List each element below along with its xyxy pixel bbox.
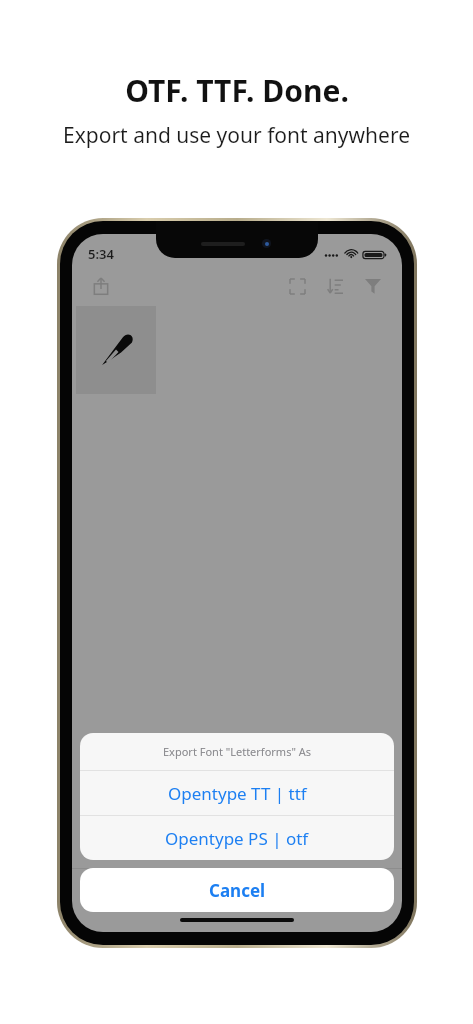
staticText: Export Font "Letterforms" As: [163, 744, 312, 759]
button[interactable]: Sort: [320, 271, 350, 301]
button[interactable]: Filter: [358, 271, 388, 301]
button[interactable]: Share: [86, 271, 116, 301]
button[interactable]: Cancel: [80, 868, 394, 912]
staticText: OTF. TTF. Done.: [125, 70, 349, 111]
staticText: 5:34: [88, 245, 114, 263]
staticText: Opentype PS | otf: [165, 827, 309, 850]
staticText: Cancel: [209, 879, 266, 902]
button[interactable]: Fit to screen: [282, 271, 312, 301]
staticText: Export and use your font anywhere: [63, 121, 410, 150]
button[interactable]: Opentype PS | otf: [80, 816, 394, 860]
button[interactable]: Opentype TT | ttf: [80, 771, 394, 815]
staticText: Opentype TT | ttf: [168, 782, 307, 805]
button[interactable]: [76, 306, 156, 394]
